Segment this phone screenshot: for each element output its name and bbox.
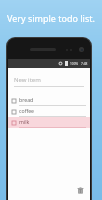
staticText: 100% (70, 62, 79, 66)
button[interactable]: bread (8, 95, 90, 106)
staticText: 7:48 (81, 62, 88, 66)
staticText: New item (14, 76, 41, 84)
staticText: bread (19, 96, 34, 103)
other: Settings (58, 61, 63, 66)
button[interactable]: coffee (8, 106, 90, 117)
staticText: coffee (19, 107, 35, 114)
button[interactable]: milk (8, 117, 90, 128)
staticText: milk (19, 118, 30, 125)
staticText: Very simple todo list. (7, 12, 95, 24)
button[interactable]: New item (14, 76, 84, 87)
button[interactable]: Delete completed items (76, 186, 85, 195)
